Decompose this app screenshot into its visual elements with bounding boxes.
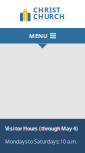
staticText: Mondays to Saturdays: 10 a.m. (5, 138, 77, 145)
button[interactable]: MENU (0, 28, 85, 43)
staticText: ALEXANDRIA, VIRGINIA (33, 19, 65, 22)
staticText: MENU (29, 32, 47, 40)
staticText: CHRIST (33, 6, 60, 13)
staticText: Visitor Hours (through May 4) (5, 125, 78, 132)
staticText: CHURCH (33, 12, 65, 20)
